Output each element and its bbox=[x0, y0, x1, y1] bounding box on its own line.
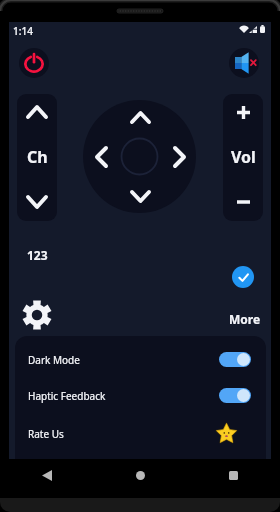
button[interactable]: Home bbox=[94, 460, 187, 490]
button[interactable]: Recents bbox=[187, 460, 280, 490]
button[interactable]: Vol down bbox=[223, 183, 263, 221]
button[interactable]: Ch up bbox=[17, 94, 57, 131]
button[interactable]: Mute bbox=[229, 48, 259, 78]
button[interactable]: Settings bbox=[20, 298, 54, 332]
button[interactable]: Dark Mode bbox=[15, 348, 266, 371]
button[interactable]: Right bbox=[168, 141, 190, 173]
button[interactable]: Haptic Feedback bbox=[15, 384, 266, 407]
staticText: Ch bbox=[27, 146, 48, 168]
button[interactable]: 123 bbox=[22, 245, 56, 265]
staticText: Vol bbox=[231, 146, 256, 168]
staticText: Dark Mode bbox=[28, 353, 80, 367]
button[interactable]: Left bbox=[90, 141, 112, 173]
button[interactable]: Rate Us bbox=[15, 422, 266, 445]
button[interactable]: Vol up bbox=[223, 94, 263, 131]
staticText: 1:14 bbox=[13, 24, 33, 38]
button[interactable]: Switch bbox=[219, 352, 251, 367]
button[interactable]: Back bbox=[0, 460, 94, 490]
button[interactable]: Rate Us bbox=[216, 423, 237, 444]
staticText: Haptic Feedback bbox=[28, 389, 106, 403]
staticText: Rate Us bbox=[28, 427, 64, 441]
staticText: More bbox=[229, 311, 261, 327]
button[interactable]: Ch down bbox=[17, 183, 57, 221]
staticText: 123 bbox=[27, 247, 48, 263]
button[interactable]: Power bbox=[19, 48, 49, 78]
button[interactable]: Confirm bbox=[232, 266, 254, 288]
button[interactable]: Up bbox=[124, 106, 156, 128]
button[interactable]: OK bbox=[121, 138, 159, 176]
button[interactable]: Switch bbox=[219, 388, 251, 403]
button[interactable]: Down bbox=[124, 185, 156, 207]
button[interactable]: More bbox=[228, 308, 262, 330]
